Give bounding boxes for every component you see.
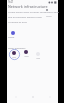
staticText: Ut labore et dolo xyxy=(8,20,27,23)
staticText: Alex xyxy=(12,56,16,59)
staticText: Active xyxy=(8,36,15,39)
staticText: Add xyxy=(36,57,40,60)
staticText: more xyxy=(46,15,52,18)
button[interactable]: Status xyxy=(11,31,15,35)
staticText: Lorem ipsum dolor sit amet consectetur a… xyxy=(8,10,59,13)
button[interactable]: Add xyxy=(34,52,42,60)
staticText: Sed do eiusmod tempor incidi xyxy=(8,15,42,18)
button[interactable]: Alex xyxy=(10,51,18,59)
button[interactable]: Sam xyxy=(22,50,30,58)
staticText: 9:41 xyxy=(8,0,14,4)
staticText: Team members xyxy=(8,46,26,49)
staticText: Network infrastructure xyxy=(8,4,48,9)
staticText: Sam xyxy=(24,55,29,58)
